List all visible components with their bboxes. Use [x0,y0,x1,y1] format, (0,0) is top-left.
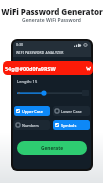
button[interactable]: Symbols [53,120,90,130]
staticText: Generate [41,145,64,152]
staticText: 0:30 [16,42,24,47]
button[interactable]: Numbers [14,120,50,130]
staticText: WIFI PASSWORD ANALYZER [16,50,64,55]
staticText: Lower Case [61,109,82,114]
staticText: Symbols [61,123,77,128]
staticText: Generate WiFi Password [22,17,81,24]
other: Copy password [86,66,91,71]
staticText: Length: 15 [17,79,38,84]
button[interactable]: Generate [17,141,87,155]
button[interactable]: Upper Case [14,106,50,116]
button[interactable]: Lower Case [53,106,90,116]
staticText: Upper Case [22,109,43,114]
staticText: 54g@#00d0fa9RSW [5,65,56,72]
button[interactable]: 54g@#00d0fa9RSW [3,61,93,75]
staticText: WiFi Password Generator [1,6,103,17]
staticText: Numbers [22,123,39,128]
